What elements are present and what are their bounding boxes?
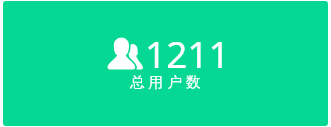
- staticText: 1211: [145, 28, 230, 78]
- button[interactable]: [3, 1, 328, 126]
- other: Total users: [100, 30, 150, 76]
- staticText: 总用户数: [130, 73, 205, 91]
